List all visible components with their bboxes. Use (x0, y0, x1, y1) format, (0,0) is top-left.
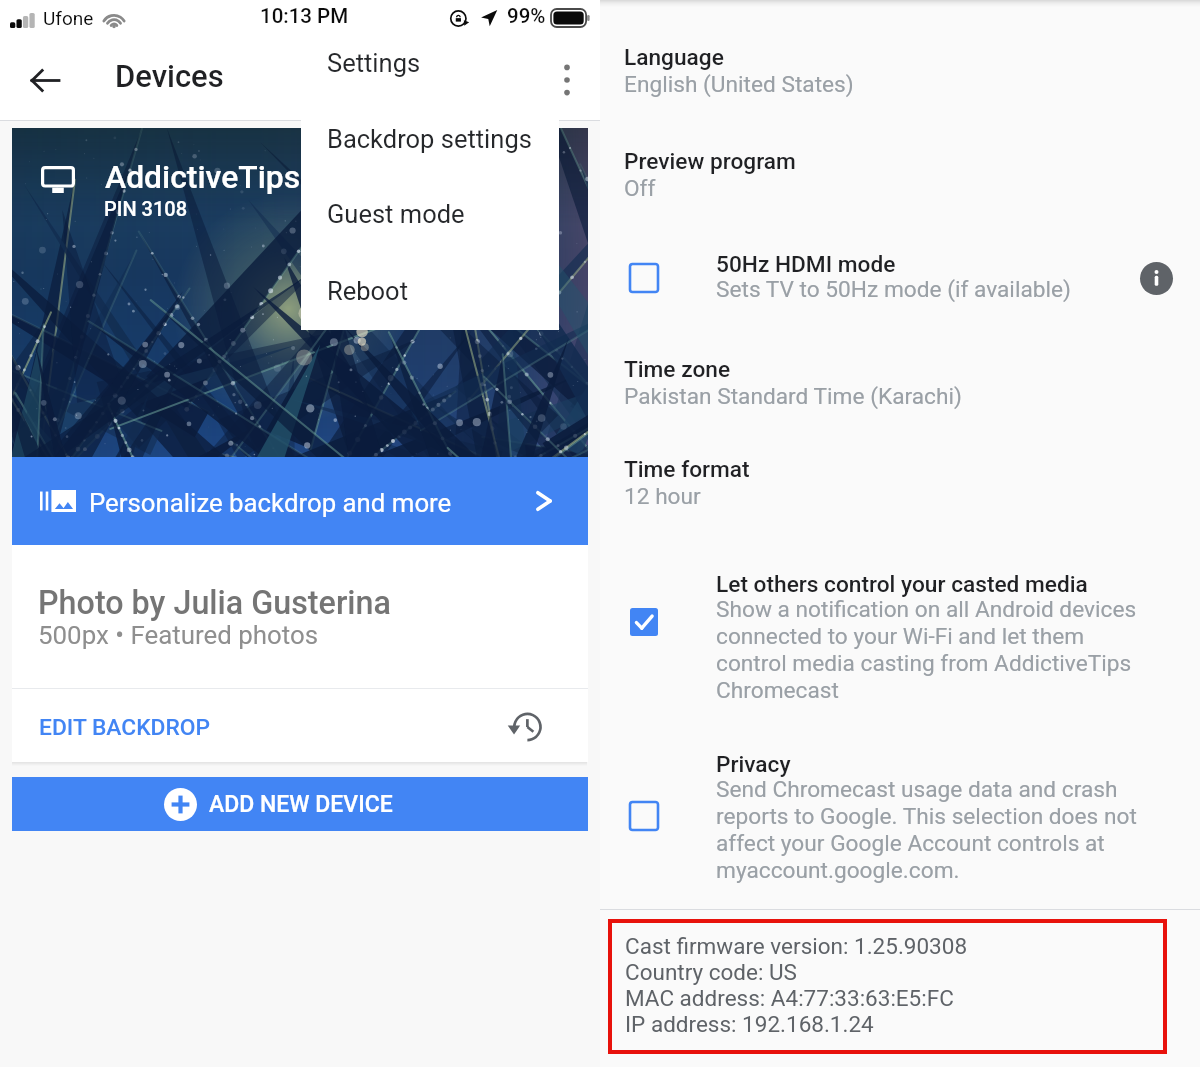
staticText: Reboot (327, 276, 408, 306)
staticText: Time zone (624, 356, 731, 383)
button[interactable]: Reboot (301, 261, 559, 321)
staticText: IP address: 192.168.1.24 (625, 1011, 874, 1037)
button[interactable]: Backdrop history (503, 705, 547, 749)
staticText: AddictiveTips (105, 158, 301, 195)
staticText: 10:13 PM (260, 4, 349, 28)
staticText: Settings (327, 48, 421, 78)
button[interactable]: Settings (301, 33, 559, 93)
staticText: English (United States) (624, 71, 854, 98)
staticText: 99% (507, 4, 546, 28)
staticText: Show a notification on all Android devic… (716, 596, 1156, 704)
button[interactable]: Backdrop settings (301, 109, 559, 169)
button[interactable]: AddictiveTips (12, 128, 588, 457)
staticText: 500px • Featured photos (38, 620, 319, 650)
button[interactable]: ADD NEW DEVICE (12, 777, 588, 831)
staticText: Sets TV to 50Hz mode (if available) (716, 276, 1071, 303)
staticText: Cast firmware version: 1.25.90308 (625, 933, 968, 959)
staticText: Devices (115, 58, 224, 94)
button[interactable]: Time zone (600, 346, 1200, 420)
staticText: Personalize backdrop and more (89, 488, 452, 518)
staticText: Language (624, 44, 724, 71)
staticText: Ufone (43, 7, 94, 29)
staticText: Photo by Julia Gusterina (38, 584, 391, 622)
button[interactable]: Personalize backdrop and more (12, 457, 588, 545)
staticText: EDIT BACKDROP (39, 714, 211, 741)
staticText: Send Chromecast usage data and crash rep… (716, 776, 1156, 884)
staticText: Off (624, 175, 656, 202)
staticText: MAC address: A4:77:33:63:E5:FC (625, 985, 954, 1011)
staticText: 50Hz HDMI mode (716, 251, 896, 278)
button[interactable]: 50Hz HDMI mode (600, 239, 1200, 317)
staticText: Pakistan Standard Time (Karachi) (624, 383, 962, 410)
staticText: Country code: US (625, 959, 797, 985)
button[interactable]: Preview program (600, 138, 1200, 212)
staticText: Let others control your casted media (716, 571, 1088, 598)
staticText: Time format (624, 456, 750, 483)
staticText: ADD NEW DEVICE (209, 791, 393, 818)
button[interactable]: Language (600, 34, 1200, 108)
button[interactable]: Privacy (600, 739, 1200, 898)
button[interactable]: Back (16, 51, 74, 109)
staticText: PIN 3108 (104, 197, 188, 220)
button[interactable]: More options (562, 63, 572, 97)
staticText: 12 hour (624, 483, 701, 510)
staticText: Preview program (624, 148, 796, 175)
staticText: Guest mode (327, 199, 465, 229)
button[interactable]: Time format (600, 446, 1200, 520)
button[interactable]: EDIT BACKDROP (26, 700, 224, 751)
button[interactable]: Let others control your casted media (600, 559, 1200, 718)
staticText: Backdrop settings (327, 124, 532, 154)
button[interactable]: Info (1139, 261, 1173, 295)
button[interactable]: Guest mode (301, 184, 559, 244)
staticText: Privacy (716, 751, 791, 778)
